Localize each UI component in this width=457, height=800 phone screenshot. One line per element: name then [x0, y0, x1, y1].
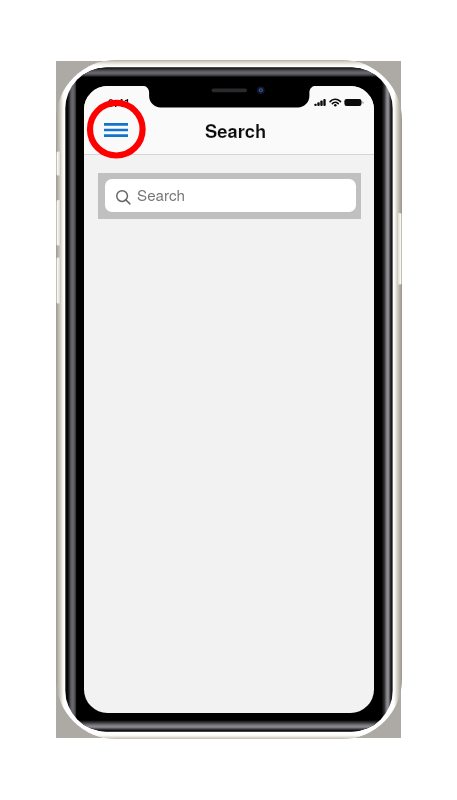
button[interactable]: Open navigation menu: [98, 115, 134, 145]
button[interactable]: Search: [105, 179, 356, 212]
staticText: 9:41: [108, 95, 131, 111]
staticText: Search: [137, 184, 186, 206]
staticText: Search: [205, 117, 267, 143]
